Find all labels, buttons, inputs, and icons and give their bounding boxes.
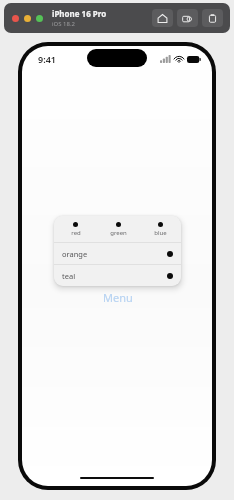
staticText: teal [62, 271, 76, 281]
button[interactable]: green [97, 216, 139, 242]
staticText: 9:41 [38, 53, 56, 65]
button[interactable]: Record [202, 9, 223, 27]
button[interactable]: red [54, 216, 97, 242]
button[interactable]: Screenshot [177, 9, 198, 27]
staticText: red [71, 229, 81, 237]
button[interactable]: teal [54, 265, 181, 286]
staticText: iOS 18.2 [52, 20, 75, 28]
staticText: blue [154, 229, 167, 237]
button[interactable]: Home [152, 9, 173, 27]
button[interactable] [36, 15, 43, 22]
button[interactable]: blue [139, 216, 181, 242]
staticText: orange [62, 249, 88, 259]
button[interactable]: orange [54, 243, 181, 264]
staticText: iPhone 16 Pro [52, 8, 107, 19]
button[interactable] [12, 15, 19, 22]
button[interactable] [24, 15, 31, 22]
staticText: green [110, 229, 127, 237]
button[interactable]: Menu [103, 290, 133, 305]
